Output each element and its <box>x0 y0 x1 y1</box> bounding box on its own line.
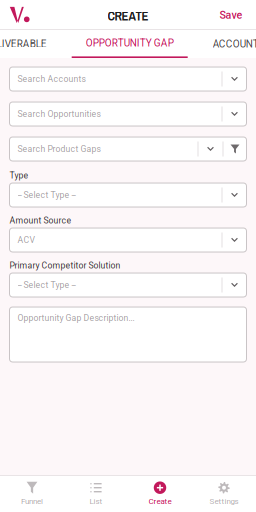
staticText: Funnel <box>21 497 43 506</box>
staticText: ACV <box>17 235 35 245</box>
staticText: CREATE <box>107 7 148 25</box>
staticText: DELIVERABLE <box>0 38 47 50</box>
button[interactable]: Settings <box>192 476 256 512</box>
staticText: Create <box>148 497 171 506</box>
button[interactable]: -- Select Type -- <box>9 183 246 207</box>
button[interactable]: Search Accounts <box>9 67 246 91</box>
button[interactable]: Search Opportunities <box>9 102 246 126</box>
button[interactable]: Create <box>128 476 192 512</box>
button[interactable]: Funnel <box>0 476 64 512</box>
staticText: -- Select Type -- <box>17 190 75 200</box>
staticText: ACCOUNT GAP <box>213 38 256 50</box>
staticText: Search Opportunities <box>17 109 100 119</box>
button[interactable]: ACV <box>9 228 246 252</box>
staticText: Opportunity Gap Description... <box>17 313 134 323</box>
staticText: Primary Competitor Solution <box>9 260 120 271</box>
staticText: Search Product Gaps <box>17 144 100 154</box>
button[interactable]: Search Product Gaps <box>9 137 246 161</box>
staticText: List <box>89 497 102 506</box>
button[interactable]: Opportunity Gap Description... <box>9 307 246 362</box>
staticText: OPPORTUNITY GAP <box>86 37 174 49</box>
button[interactable]: ACCOUNT GAP <box>193 30 256 58</box>
button[interactable]: Save <box>219 0 256 31</box>
staticText: Type <box>9 170 28 181</box>
staticText: Settings <box>209 497 238 506</box>
staticText: -- Select Type -- <box>17 280 75 290</box>
button[interactable]: -- Select Type -- <box>9 273 246 297</box>
button[interactable]: Home <box>0 0 38 29</box>
staticText: Save <box>219 9 242 21</box>
button[interactable]: OPPORTUNITY GAP <box>66 30 193 58</box>
staticText: Amount Source <box>9 215 71 226</box>
staticText: Search Accounts <box>17 74 85 84</box>
button[interactable]: DELIVERABLE <box>0 30 66 58</box>
button[interactable]: List <box>64 476 128 512</box>
